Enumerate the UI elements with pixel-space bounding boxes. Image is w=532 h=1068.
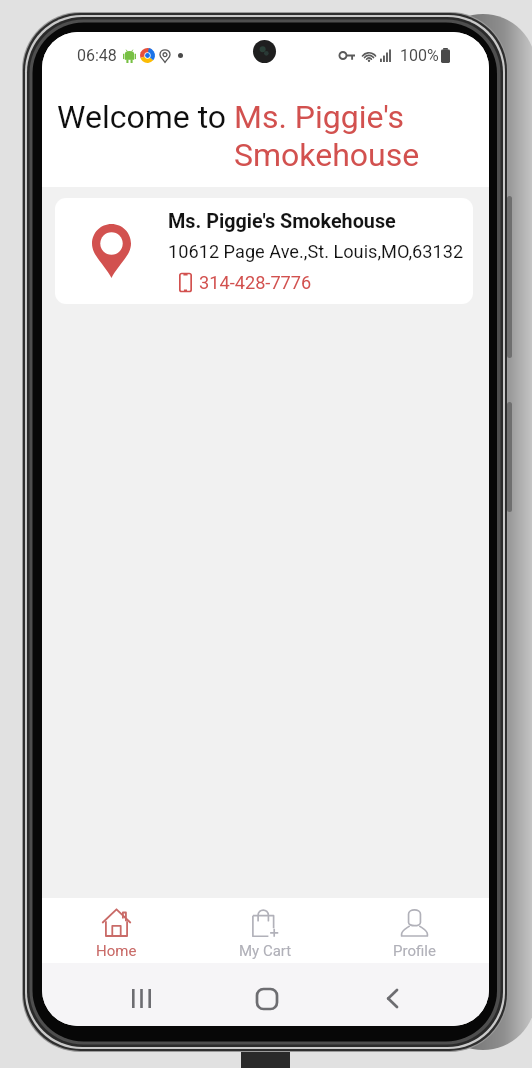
staticText: Welcome to bbox=[57, 98, 234, 136]
staticText: My Cart bbox=[239, 942, 292, 960]
button[interactable]: My Cart bbox=[191, 898, 340, 963]
staticText: 314-428-7776 bbox=[199, 272, 312, 293]
staticText: Profile bbox=[393, 942, 436, 960]
staticText: 100% bbox=[400, 46, 439, 65]
staticText: 10612 Page Ave.,St. Louis,MO,63132 bbox=[168, 241, 464, 262]
button[interactable]: Recent apps bbox=[109, 963, 173, 1026]
button[interactable]: Ms. Piggie's Smokehouse bbox=[55, 198, 473, 304]
button[interactable]: Home bbox=[42, 898, 191, 963]
button[interactable]: Home bbox=[235, 963, 299, 1026]
staticText: Ms. Piggie's Smokehouse bbox=[168, 210, 396, 233]
staticText: Home bbox=[96, 942, 137, 960]
staticText: 06:48 bbox=[77, 46, 117, 65]
button[interactable]: Profile bbox=[340, 898, 489, 963]
staticText: Ms. Piggie's Smokehouse bbox=[234, 98, 473, 174]
button[interactable]: Back bbox=[360, 963, 424, 1026]
